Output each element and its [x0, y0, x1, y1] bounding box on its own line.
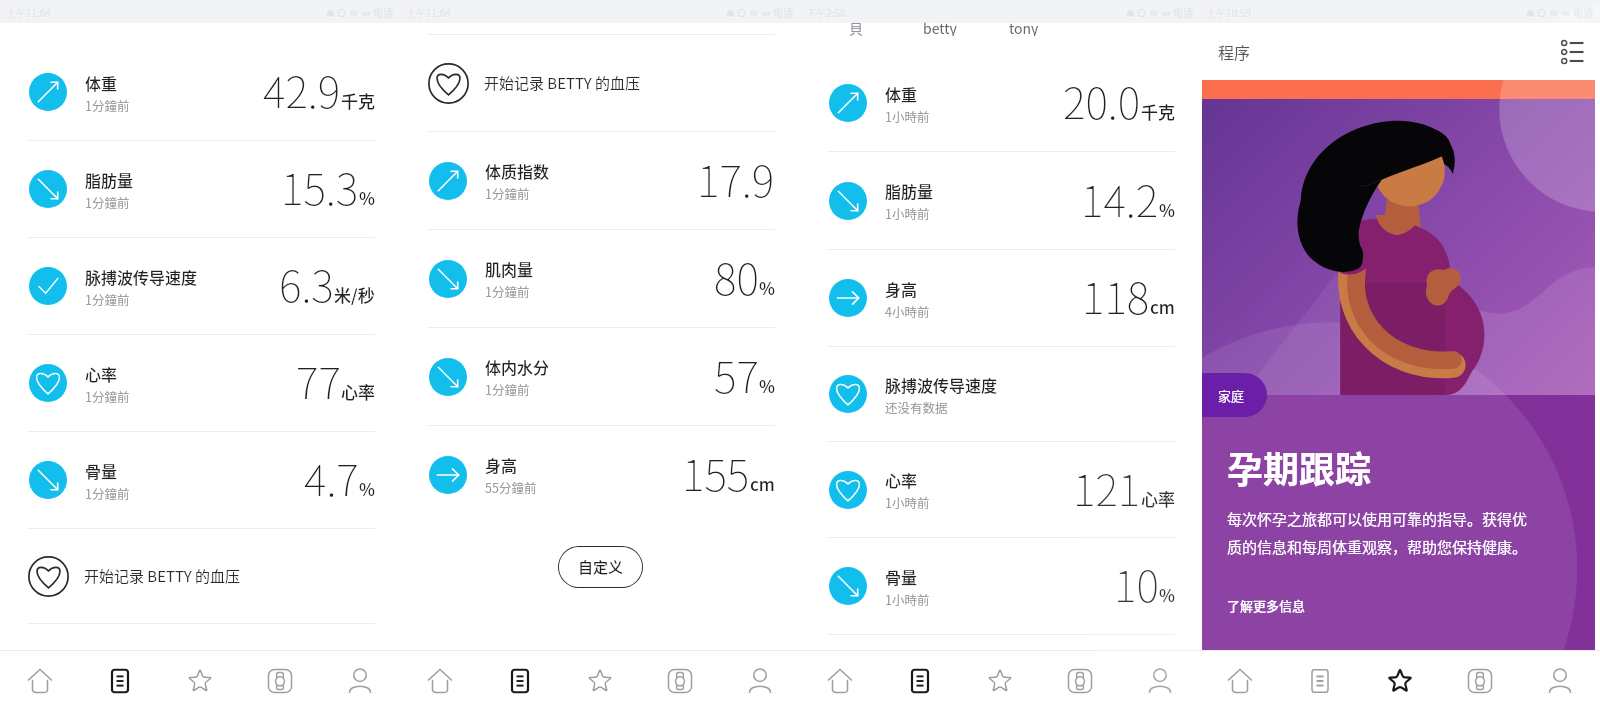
staticText: 体内水分: [485, 355, 550, 378]
staticText: 1分鐘前: [485, 380, 530, 398]
staticText: %: [759, 275, 775, 300]
button[interactable]: Profile: [1520, 651, 1600, 710]
button[interactable]: Home: [400, 651, 480, 710]
staticText: 脉搏波传导速度: [885, 373, 998, 396]
staticText: 开始记录 BETTY 的血压: [84, 565, 241, 587]
staticText: 155: [682, 441, 750, 503]
staticText: 42.9: [263, 58, 341, 120]
staticText: 身高: [885, 277, 918, 300]
button[interactable]: Programs: [160, 651, 240, 710]
button[interactable]: 脉搏波传导速度: [0, 238, 400, 334]
button[interactable]: Profile: [1120, 651, 1200, 710]
staticText: 家庭: [1218, 386, 1245, 405]
button[interactable]: Profile: [320, 651, 400, 710]
staticText: 15.3: [281, 155, 359, 217]
staticText: %: [759, 373, 775, 398]
staticText: 每次怀孕之旅都可以使用可靠的指导。获得优质的信息和每周体重观察，帮助您保持健康。: [1227, 508, 1533, 558]
button[interactable]: Records: [880, 651, 960, 710]
staticText: 1分鐘前: [85, 290, 130, 308]
staticText: 骨量: [885, 565, 918, 588]
button[interactable]: Home: [800, 651, 880, 710]
staticText: 1分鐘前: [485, 282, 530, 300]
staticText: 心率: [341, 379, 375, 404]
staticText: 118: [1082, 264, 1150, 326]
button[interactable]: 体质指数: [400, 132, 800, 229]
staticText: 57: [714, 343, 759, 405]
button[interactable]: 开始记录 BETTY 的血压: [400, 35, 800, 131]
button[interactable]: Programs: [960, 651, 1040, 710]
staticText: 上午11:04: [406, 5, 451, 19]
staticText: %: [359, 185, 375, 210]
button[interactable]: 骨量: [0, 432, 400, 528]
staticText: 55分鐘前: [485, 478, 537, 496]
button[interactable]: 骨量: [800, 538, 1200, 634]
staticText: 4.7: [304, 446, 359, 508]
button[interactable]: 身高: [800, 250, 1200, 346]
staticText: 程序: [1218, 40, 1251, 63]
staticText: 1分鐘前: [85, 193, 130, 211]
button[interactable]: 心率: [0, 335, 400, 431]
staticText: %: [1159, 582, 1175, 607]
button[interactable]: Home: [1200, 651, 1280, 710]
button[interactable]: 开始记录 BETTY 的血压: [0, 529, 400, 623]
button[interactable]: 心率: [800, 442, 1200, 537]
staticText: 1分鐘前: [85, 96, 130, 114]
staticText: 肌肉量: [485, 257, 534, 280]
button[interactable]: Devices: [1040, 651, 1120, 710]
staticText: %: [359, 476, 375, 501]
staticText: 上午11:04: [6, 5, 51, 19]
button[interactable]: 家庭: [1202, 80, 1595, 650]
staticText: 还没有数据: [885, 398, 948, 416]
staticText: 脉搏波传导速度: [85, 265, 198, 288]
button[interactable]: Devices: [240, 651, 320, 710]
staticText: %: [1159, 197, 1175, 222]
staticText: 1小時前: [885, 107, 930, 125]
button[interactable]: 脉搏波传导速度: [800, 347, 1200, 441]
staticText: 10: [1114, 552, 1159, 614]
button[interactable]: 了解更多信息: [1227, 596, 1306, 615]
staticText: cm: [750, 471, 775, 496]
button[interactable]: 体重: [0, 44, 400, 140]
button[interactable]: Devices: [640, 651, 720, 710]
button[interactable]: Programs: [560, 651, 640, 710]
button[interactable]: Home: [0, 651, 80, 710]
staticText: 1小時前: [885, 204, 930, 222]
staticText: 心率: [885, 468, 918, 491]
button[interactable]: 肌肉量: [400, 230, 800, 327]
button[interactable]: Records: [1280, 651, 1360, 710]
staticText: 14.2: [1081, 167, 1159, 229]
staticText: 121: [1073, 456, 1141, 518]
button[interactable]: Records: [480, 651, 560, 710]
staticText: 体重: [85, 71, 118, 94]
staticText: 自定义: [578, 556, 624, 578]
staticText: 20.0: [1063, 69, 1141, 131]
staticText: 4小時前: [885, 302, 930, 320]
button[interactable]: betty: [923, 18, 957, 36]
button[interactable]: 体重: [800, 55, 1200, 151]
staticText: 脂肪量: [885, 179, 934, 202]
staticText: 脂肪量: [85, 168, 134, 191]
staticText: 1分鐘前: [85, 484, 130, 502]
button[interactable]: 体内水分: [400, 328, 800, 425]
staticText: 6.3: [279, 252, 334, 314]
button[interactable]: Menu: [1555, 35, 1589, 69]
staticText: 体重: [885, 82, 918, 105]
button[interactable]: Programs: [1360, 651, 1440, 710]
staticText: 1小時前: [885, 493, 930, 511]
staticText: 身高: [485, 453, 518, 476]
button[interactable]: Records: [80, 651, 160, 710]
button[interactable]: 身高: [400, 426, 800, 523]
staticText: 下午2:50: [806, 5, 846, 19]
button[interactable]: 自定义: [558, 546, 643, 588]
staticText: 心率: [85, 362, 118, 385]
staticText: 80: [714, 245, 759, 307]
button[interactable]: 貝: [849, 18, 863, 36]
staticText: 体质指数: [485, 159, 550, 182]
button[interactable]: 脂肪量: [0, 141, 400, 237]
staticText: ✱ ⊙ ≈ ≔ 电话: [326, 5, 394, 19]
staticText: 1小時前: [885, 590, 930, 608]
button[interactable]: Profile: [720, 651, 800, 710]
button[interactable]: Devices: [1440, 651, 1520, 710]
button[interactable]: tony: [1009, 18, 1039, 36]
button[interactable]: 脂肪量: [800, 152, 1200, 249]
